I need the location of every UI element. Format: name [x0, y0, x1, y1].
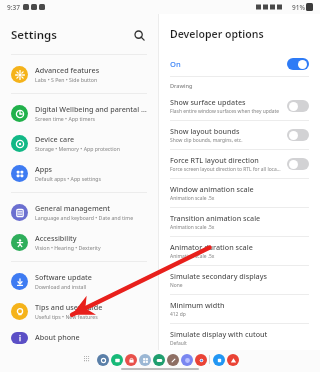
button[interactable]: All apps	[81, 353, 94, 366]
button[interactable]: Advanced features	[5, 60, 153, 88]
button[interactable]: Show surface updates	[159, 92, 320, 120]
button[interactable]: App game	[153, 354, 165, 366]
staticText: Show clip bounds, margins, etc.	[170, 137, 243, 144]
button[interactable]: Off	[287, 100, 309, 112]
button[interactable]: About phone	[5, 327, 153, 349]
staticText: Device care	[35, 134, 75, 144]
staticText: Labs • S Pen • Side button	[35, 76, 98, 83]
button[interactable]: App msg	[111, 354, 123, 366]
button[interactable]: Device care	[5, 129, 153, 157]
staticText: Force RTL layout direction	[170, 155, 259, 165]
staticText: Accessibility	[35, 233, 77, 243]
button[interactable]: General management	[5, 198, 153, 226]
staticText: Software update	[35, 272, 92, 282]
staticText: Flash entire window surfaces when they u…	[170, 108, 280, 115]
button[interactable]: App grid	[139, 354, 151, 366]
button[interactable]: Apps	[5, 159, 153, 187]
staticText: Settings	[11, 27, 57, 43]
button[interactable]: Search	[130, 26, 148, 44]
button[interactable]: On	[287, 58, 309, 70]
button[interactable]: Accessibility	[5, 228, 153, 256]
staticText: Screen time • App timers	[35, 115, 96, 122]
staticText: Tips and user guide	[35, 302, 103, 312]
staticText: Storage • Memory • App protection	[35, 145, 120, 152]
staticText: 91%	[292, 3, 305, 12]
staticText: Animation scale .5x	[170, 195, 215, 202]
staticText: Download and install	[35, 283, 87, 290]
button[interactable]: App pen	[167, 354, 179, 366]
button[interactable]: Force RTL layout direction	[159, 150, 320, 178]
staticText: Default	[170, 340, 187, 345]
button[interactable]: Tips and user guide	[5, 297, 153, 325]
button[interactable]: Off	[287, 129, 309, 141]
staticText: On	[170, 59, 181, 69]
staticText: Advanced features	[35, 65, 100, 75]
button[interactable]: App sq	[213, 354, 225, 366]
button[interactable]: Off	[287, 158, 309, 170]
button[interactable]: Simulate secondary displays	[159, 266, 320, 294]
button[interactable]: On	[159, 54, 320, 76]
staticText: Force screen layout direction to RTL for…	[170, 166, 281, 173]
staticText: Drawing	[170, 82, 193, 90]
staticText: Animation scale .5x	[170, 224, 215, 231]
staticText: Show layout bounds	[170, 126, 240, 136]
staticText: Default apps • App settings	[35, 175, 102, 182]
button[interactable]: Animator duration scale	[159, 237, 320, 265]
staticText: Useful tips • New features	[35, 313, 98, 320]
staticText: About phone	[35, 332, 80, 342]
staticText: Animator duration scale	[170, 242, 253, 252]
button[interactable]: Software update	[5, 267, 153, 295]
staticText: Simulate display with cutout	[170, 329, 268, 339]
button[interactable]: Minimum width	[159, 295, 320, 323]
staticText: Developer options	[170, 27, 264, 41]
button[interactable]: App drive	[227, 354, 239, 366]
staticText: Vision • Hearing • Dexterity	[35, 244, 101, 251]
staticText: Language and keyboard • Date and time	[35, 214, 134, 221]
button[interactable]: Simulate display with cutout	[159, 324, 320, 350]
staticText: None	[170, 282, 183, 289]
button[interactable]: Show layout bounds	[159, 121, 320, 149]
button[interactable]: App bag	[125, 354, 137, 366]
button[interactable]: App orb	[181, 354, 193, 366]
button[interactable]: Digital Wellbeing and parental controls	[5, 99, 153, 127]
staticText: Minimum width	[170, 300, 225, 310]
button[interactable]: Transition animation scale	[159, 208, 320, 236]
staticText: Show surface updates	[170, 97, 246, 107]
button[interactable]: App chrome	[195, 354, 207, 366]
staticText: General management	[35, 203, 111, 213]
staticText: 9:37	[7, 3, 20, 12]
staticText: Digital Wellbeing and parental controls	[35, 104, 147, 114]
button[interactable]: App ring	[97, 354, 109, 366]
button[interactable]: Window animation scale	[159, 179, 320, 207]
staticText: Apps	[35, 164, 53, 174]
staticText: Transition animation scale	[170, 213, 261, 223]
staticText: 412 dp	[170, 311, 186, 318]
staticText: Simulate secondary displays	[170, 271, 268, 281]
staticText: Animation scale .5x	[170, 253, 215, 260]
staticText: Window animation scale	[170, 184, 254, 194]
